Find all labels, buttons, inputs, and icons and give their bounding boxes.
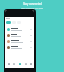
- button[interactable]: [5, 26, 34, 32]
- button[interactable]: [5, 32, 34, 38]
- button[interactable]: [6, 21, 11, 24]
- button[interactable]: Chats: [17, 61, 22, 66]
- staticText: with everyone you love: [21, 7, 43, 10]
- button[interactable]: [5, 38, 34, 44]
- button[interactable]: Profile: [28, 61, 33, 66]
- button[interactable]: [5, 44, 34, 50]
- button[interactable]: Groups: [11, 61, 16, 66]
- button[interactable]: Calls: [23, 61, 28, 66]
- button[interactable]: Home: [6, 61, 11, 66]
- staticText: Stay connected: [23, 2, 42, 6]
